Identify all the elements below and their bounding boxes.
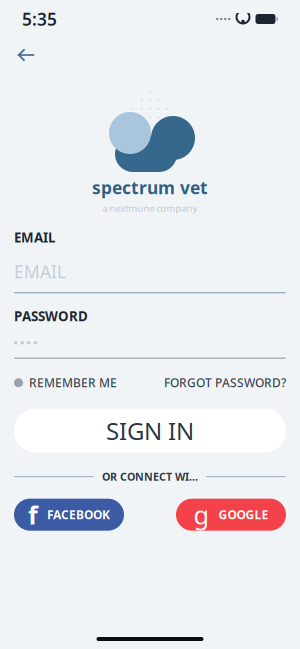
staticText: spectrum vet — [92, 176, 208, 199]
button[interactable]: g — [176, 499, 286, 531]
button[interactable]: FORGOT PASSWORD? — [164, 371, 286, 395]
button[interactable]: REMEMBER ME — [14, 371, 117, 395]
button[interactable]: f — [14, 499, 124, 531]
staticText: GOOGLE — [218, 507, 268, 523]
staticText: EMAIL — [14, 228, 55, 246]
staticText: PASSWORD — [14, 307, 88, 325]
staticText: f — [28, 498, 38, 531]
button[interactable]: Back — [6, 38, 46, 72]
staticText: 5:35 — [22, 7, 57, 30]
staticText: g — [193, 498, 209, 531]
staticText: OR CONNECT WI... — [102, 470, 198, 484]
staticText: REMEMBER ME — [29, 375, 117, 391]
staticText: FACEBOOK — [47, 507, 110, 523]
button[interactable]: SIGN IN — [14, 409, 286, 453]
staticText: a nextmune company — [102, 202, 197, 214]
staticText: FORGOT PASSWORD? — [164, 375, 286, 391]
staticText: EMAIL — [14, 260, 66, 283]
staticText: SIGN IN — [106, 415, 194, 447]
